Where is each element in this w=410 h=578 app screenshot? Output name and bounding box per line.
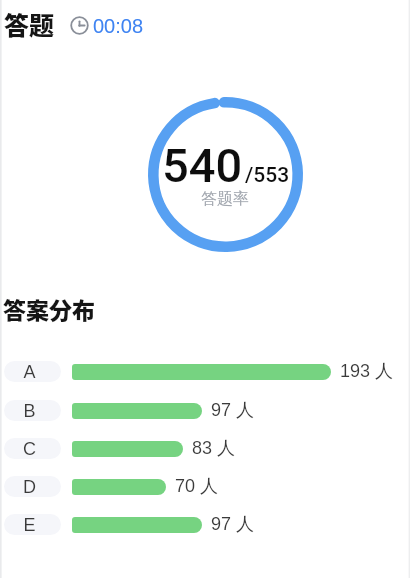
staticText: 答题 (4, 6, 55, 42)
staticText: 00:08 (93, 15, 144, 37)
button[interactable]: D (0, 470, 410, 503)
staticText: D (23, 477, 36, 497)
staticText: 193 人 (340, 360, 394, 383)
button[interactable]: C (0, 432, 410, 465)
staticText: C (23, 439, 36, 459)
staticText: E (23, 515, 36, 535)
staticText: 540 (162, 138, 243, 193)
staticText: 答案分布 (3, 292, 95, 325)
staticText: 97 人 (211, 399, 255, 422)
other: Countdown timer (70, 16, 89, 35)
staticText: A (23, 362, 36, 382)
staticText: 83 人 (192, 437, 236, 460)
staticText: 70 人 (175, 475, 219, 498)
button[interactable]: 答题 (4, 5, 144, 43)
button[interactable]: B (0, 394, 410, 427)
staticText: B (23, 401, 36, 421)
button[interactable]: A (0, 355, 410, 388)
button[interactable]: E (0, 508, 410, 541)
staticText: /553 (245, 163, 290, 188)
staticText: 答题率 (201, 189, 249, 209)
staticText: 97 人 (211, 513, 255, 536)
